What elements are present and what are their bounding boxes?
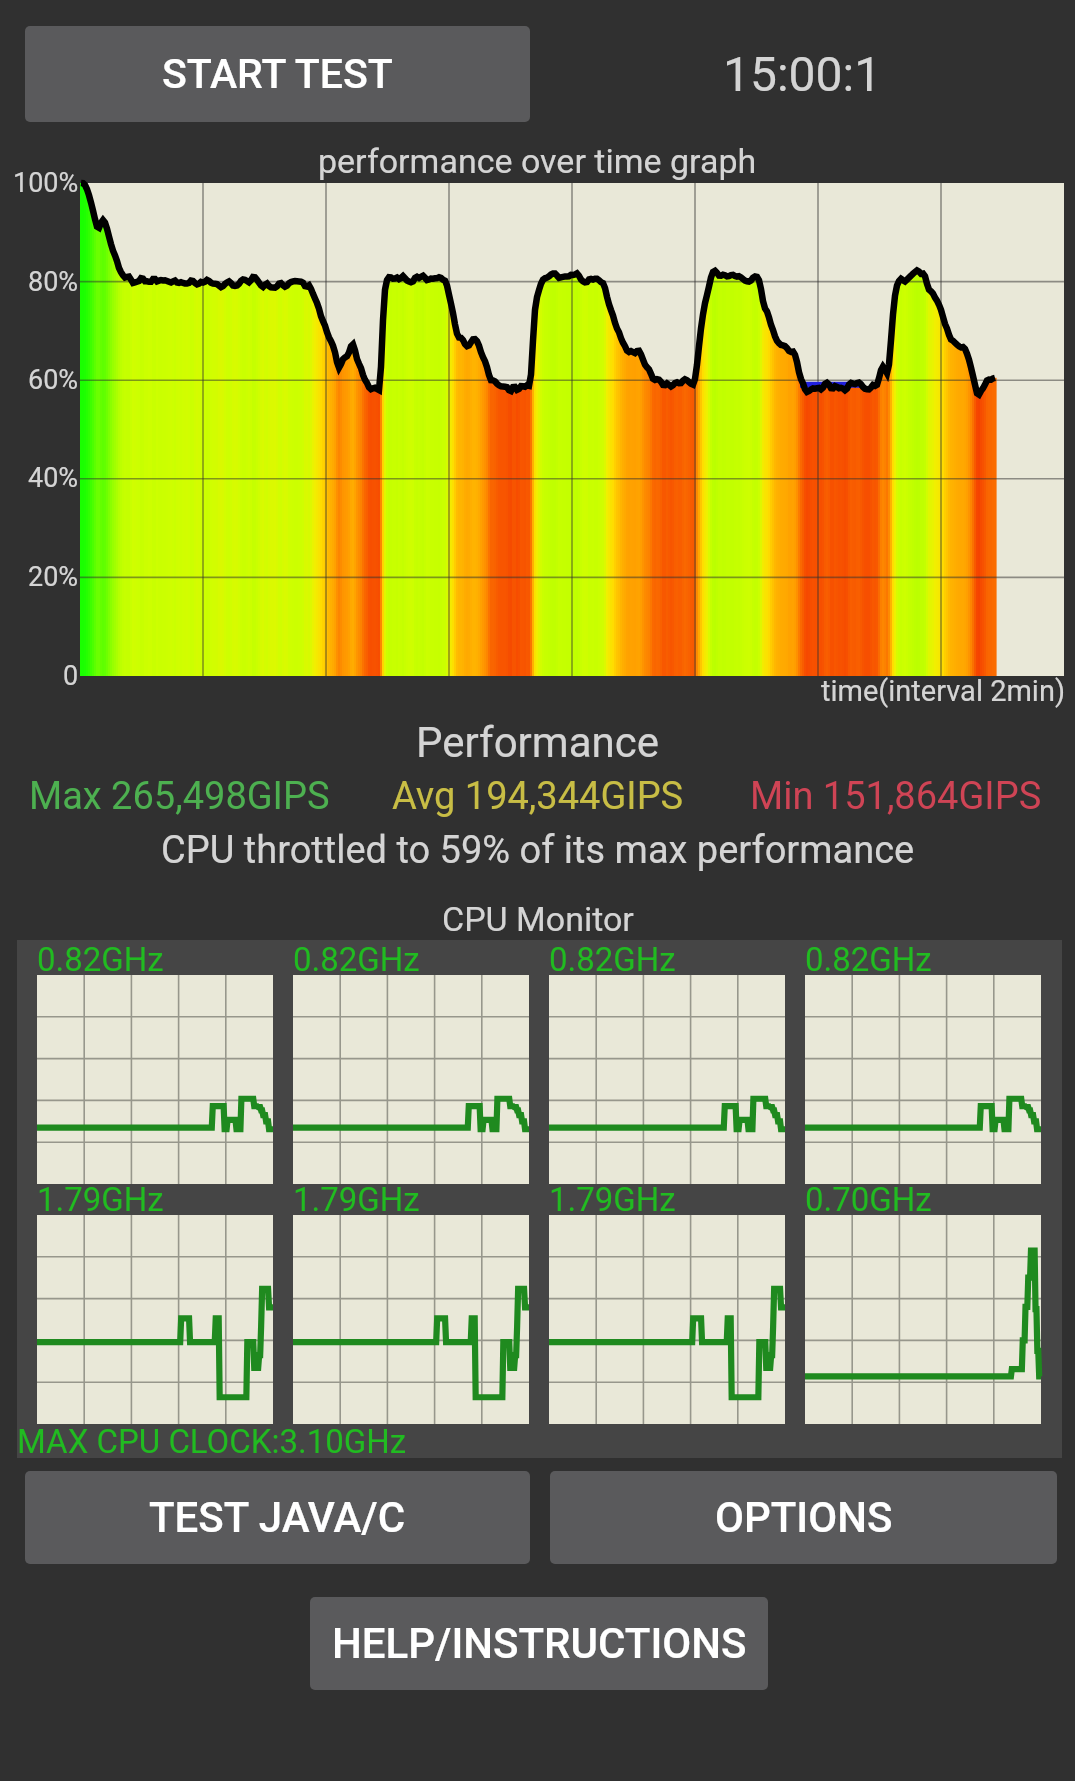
staticText: HELP/INSTRUCTIONS (332, 1619, 747, 1668)
staticText: 0.82GHz (549, 940, 676, 976)
staticText: 0.82GHz (293, 940, 420, 976)
staticText: 15:00:1 (723, 46, 882, 102)
staticText: 0.82GHz (37, 940, 164, 976)
staticText: CPU Monitor (442, 899, 634, 939)
staticText: 1.79GHz (37, 1180, 164, 1216)
staticText: 0 (63, 660, 79, 692)
staticText: 40% (28, 462, 79, 494)
staticText: CPU throttled to 59% of its max performa… (161, 828, 915, 873)
staticText: TEST JAVA/C (149, 1493, 406, 1542)
staticText: 80% (28, 266, 79, 298)
staticText: START TEST (162, 50, 393, 98)
staticText: 60% (28, 364, 79, 396)
staticText: Min 151,864GIPS (750, 774, 1042, 819)
staticText: 1.79GHz (549, 1180, 676, 1216)
staticText: 20% (28, 561, 79, 593)
other: Per-core CPU clock monitor (17, 940, 1062, 1458)
staticText: 100% (13, 167, 79, 199)
staticText: Max 265,498GIPS (29, 774, 330, 819)
staticText: Avg 194,344GIPS (392, 774, 684, 819)
staticText: 0.82GHz (805, 940, 932, 976)
staticText: time(interval 2min) (821, 674, 1066, 708)
button[interactable]: HELP/INSTRUCTIONS (310, 1597, 768, 1690)
staticText: 1.79GHz (293, 1180, 420, 1216)
button[interactable]: TEST JAVA/C (25, 1471, 530, 1564)
staticText: OPTIONS (715, 1493, 893, 1542)
staticText: 0.70GHz (805, 1180, 932, 1216)
other: Performance over time graph (80, 183, 1064, 676)
staticText: MAX CPU CLOCK:3.10GHz (17, 1422, 407, 1458)
staticText: Performance (416, 718, 659, 767)
button[interactable]: OPTIONS (550, 1471, 1057, 1564)
button[interactable]: START TEST (25, 26, 530, 122)
staticText: performance over time graph (318, 141, 757, 181)
